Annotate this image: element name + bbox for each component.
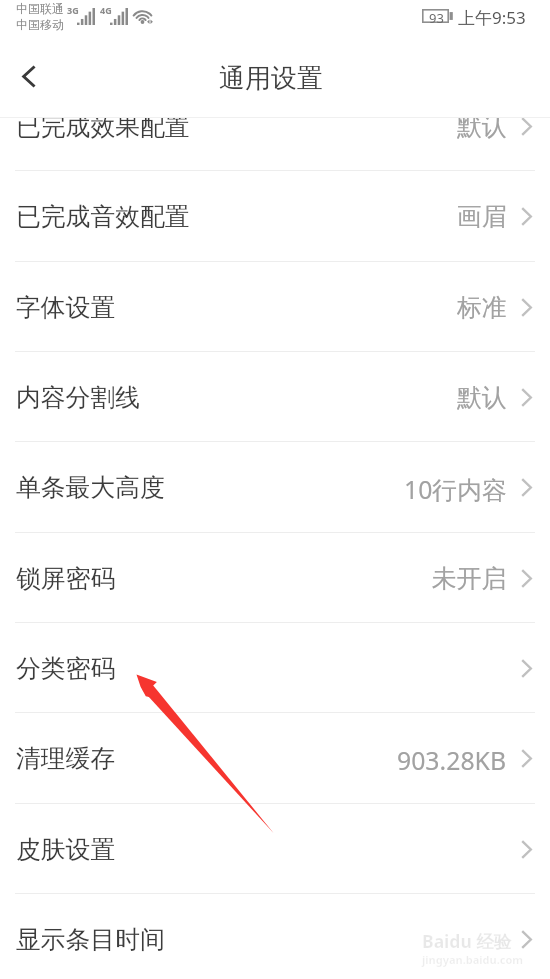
button[interactable]: 显示条目时间 [0, 893, 550, 979]
staticText: 已完成效果配置 [16, 118, 190, 141]
button[interactable]: 清理缓存 [0, 712, 550, 802]
staticText: 内容分割线 [16, 382, 140, 412]
button[interactable]: 皮肤设置 [0, 803, 550, 893]
staticText: 未开启 [432, 563, 507, 593]
staticText: 锁屏密码 [16, 563, 116, 593]
staticText: 10行内容 [404, 472, 507, 502]
staticText: 显示条目时间 [16, 924, 165, 954]
staticText: 903.28KB [397, 743, 507, 773]
staticText: 中国移动 [16, 17, 64, 32]
button[interactable]: 分类密码 [0, 622, 550, 712]
staticText: 皮肤设置 [16, 834, 116, 864]
button[interactable]: 字体设置 [0, 261, 550, 351]
staticText: 4G [100, 4, 112, 16]
staticText: 清理缓存 [16, 743, 116, 773]
staticText: 画眉 [457, 201, 507, 231]
staticText: 3G [67, 4, 79, 16]
staticText: jingyan.baidu.com [422, 952, 524, 967]
button[interactable]: 已完成音效配置 [0, 170, 550, 260]
button[interactable]: 返回 [0, 45, 57, 118]
staticText: 已完成音效配置 [16, 201, 190, 231]
button[interactable]: 单条最大高度 [0, 441, 550, 531]
staticText: 中国联通 [16, 1, 64, 16]
staticText: 上午9:53 [458, 6, 526, 29]
staticText: 字体设置 [16, 292, 116, 322]
staticText: 默认 [457, 118, 507, 141]
staticText: 93 [429, 9, 444, 23]
staticText: Baidu 经验 [422, 929, 512, 953]
staticText: 默认 [457, 382, 507, 412]
staticText: 通用设置 [219, 62, 323, 95]
button[interactable]: 已完成效果配置 [0, 118, 550, 170]
staticText: 单条最大高度 [16, 472, 165, 502]
button[interactable]: 内容分割线 [0, 351, 550, 441]
staticText: 标准 [457, 292, 507, 322]
button[interactable]: 锁屏密码 [0, 532, 550, 622]
staticText: 分类密码 [16, 653, 116, 683]
